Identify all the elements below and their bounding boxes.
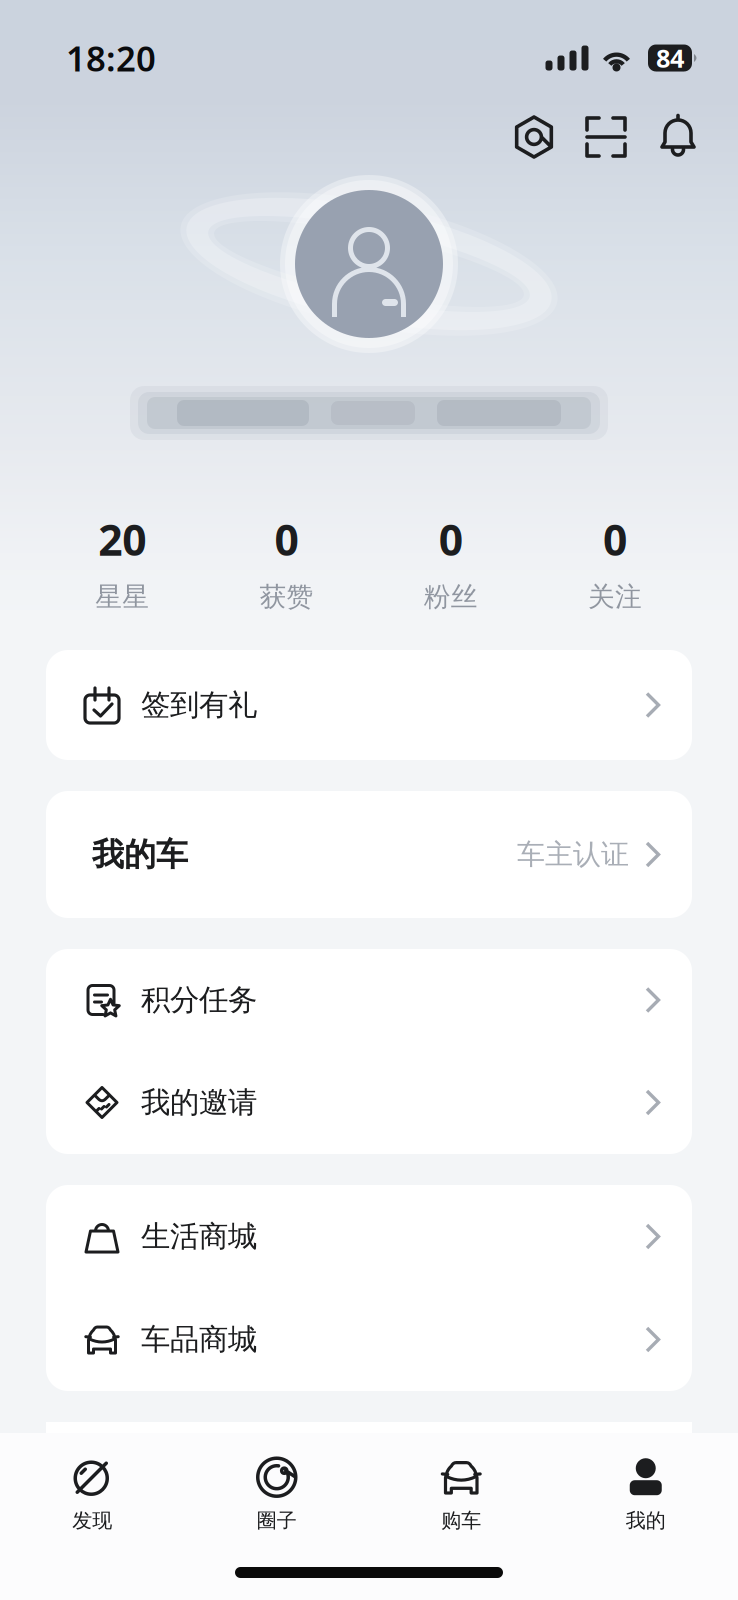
button[interactable]: 车品商城 xyxy=(46,1288,692,1391)
staticText: 我的邀请 xyxy=(141,1084,257,1120)
staticText: 车主认证 xyxy=(517,837,629,872)
staticText: 发现 xyxy=(72,1508,112,1533)
staticText: 签到有礼 xyxy=(141,687,257,723)
button[interactable]: Scan xyxy=(570,99,642,175)
button[interactable]: 0 xyxy=(204,511,368,613)
staticText: 关注 xyxy=(588,580,642,613)
button[interactable]: 签到有礼 xyxy=(46,650,692,760)
staticText: 粉丝 xyxy=(424,580,478,613)
button[interactable]: 我的 xyxy=(553,1437,738,1541)
button[interactable]: Settings xyxy=(498,99,570,175)
staticText: 我的车 xyxy=(92,835,188,874)
button[interactable]: 我的车 xyxy=(46,791,692,918)
button[interactable]: Notifications xyxy=(642,99,714,175)
button[interactable]: 发现 xyxy=(0,1437,184,1541)
staticText: 0 xyxy=(603,511,627,567)
staticText: 0 xyxy=(439,511,463,567)
staticText: 84 xyxy=(656,41,684,75)
button[interactable]: 我的邀请 xyxy=(46,1051,692,1154)
staticText: 生活商城 xyxy=(141,1218,257,1254)
staticText: 0 xyxy=(274,511,298,567)
staticText: 18:20 xyxy=(66,35,156,81)
button[interactable]: 20 xyxy=(40,511,204,613)
staticText: 圈子 xyxy=(257,1508,297,1533)
button[interactable]: 0 xyxy=(533,511,697,613)
button[interactable]: 0 xyxy=(368,511,533,613)
staticText: 获赞 xyxy=(259,580,313,613)
staticText: 星星 xyxy=(95,580,149,613)
staticText: 车品商城 xyxy=(141,1321,257,1357)
button[interactable]: 生活商城 xyxy=(46,1185,692,1288)
staticText: 20 xyxy=(98,511,146,567)
staticText: 积分任务 xyxy=(141,982,257,1018)
button[interactable]: 购车 xyxy=(369,1437,553,1541)
staticText: 购车 xyxy=(441,1508,481,1533)
button[interactable]: 积分任务 xyxy=(46,949,692,1051)
button[interactable]: 圈子 xyxy=(184,1437,369,1541)
staticText: 我的 xyxy=(626,1508,666,1533)
